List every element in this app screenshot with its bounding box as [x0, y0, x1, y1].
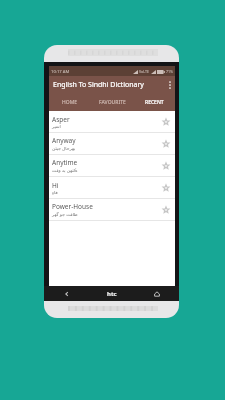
- button[interactable]: Power-House: [49, 199, 175, 220]
- button[interactable]: FAVOURITE: [91, 93, 133, 111]
- button[interactable]: Anytime: [49, 155, 175, 176]
- button[interactable]: Anyway: [49, 133, 175, 154]
- staticText: htc: [107, 290, 117, 298]
- button[interactable]: Favourite: [156, 155, 175, 176]
- button[interactable]: RECENT: [133, 93, 175, 111]
- staticText: English To Sindhi Dictionary: [53, 80, 144, 90]
- staticText: بهرحال جيئن: [52, 145, 76, 151]
- staticText: 71%: [166, 69, 174, 74]
- button[interactable]: HOME: [49, 93, 91, 111]
- staticText: VoLTE: [139, 69, 150, 74]
- button[interactable]: Home: [134, 286, 179, 301]
- staticText: اسپر: [52, 124, 61, 129]
- staticText: Anyway: [52, 136, 76, 145]
- staticText: طاقت جو گهر: [52, 211, 78, 217]
- button[interactable]: Hi: [49, 177, 175, 198]
- staticText: RECENT: [145, 99, 164, 106]
- staticText: HOME: [62, 99, 78, 106]
- button[interactable]: Favourite: [156, 111, 175, 132]
- button[interactable]: More options: [164, 76, 175, 93]
- staticText: هاءِ: [52, 190, 58, 195]
- staticText: FAVOURITE: [99, 99, 126, 106]
- staticText: ڪنهن به وقت: [52, 167, 78, 173]
- staticText: Anytime: [52, 158, 78, 167]
- staticText: Hi: [52, 181, 59, 190]
- button[interactable]: Back: [44, 286, 89, 301]
- staticText: Power-House: [52, 202, 93, 211]
- staticText: 10:17 AM: [51, 69, 70, 75]
- button[interactable]: Favourite: [156, 133, 175, 154]
- button[interactable]: HTC: [89, 286, 134, 301]
- button[interactable]: Favourite: [156, 177, 175, 198]
- button[interactable]: Favourite: [156, 199, 175, 220]
- button[interactable]: Asper: [49, 111, 175, 132]
- staticText: Asper: [52, 115, 70, 124]
